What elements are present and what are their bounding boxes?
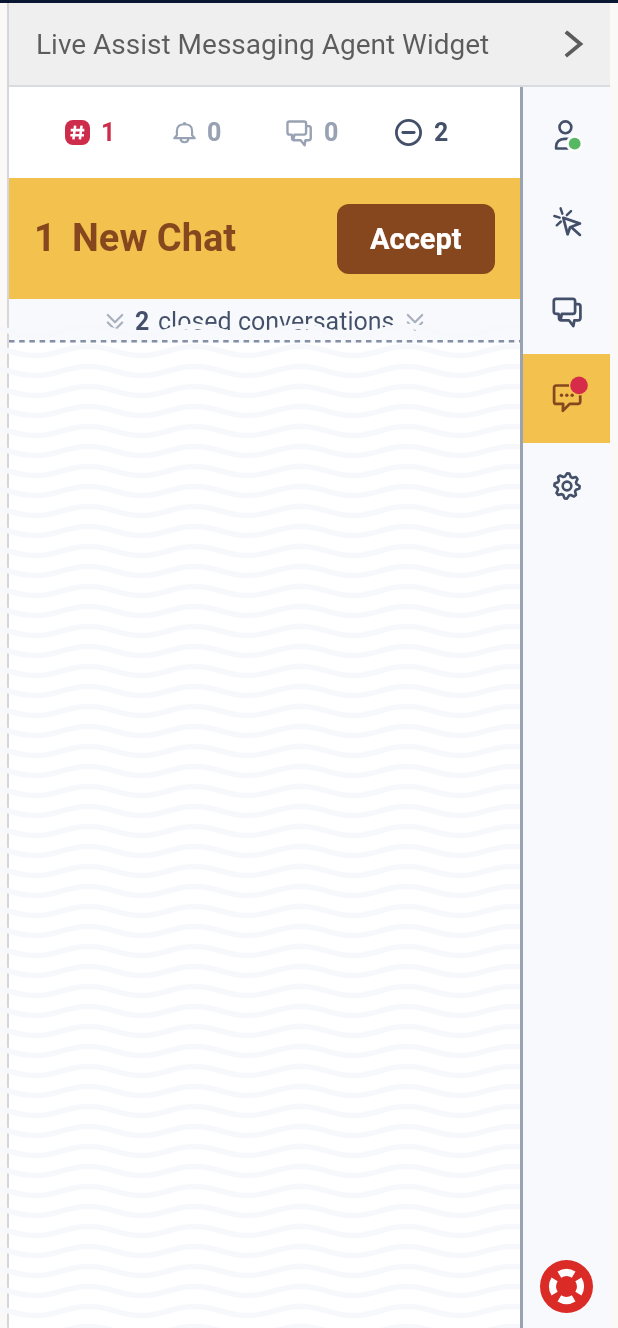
button[interactable]: 2 [9, 299, 520, 343]
button[interactable]: Settings [523, 443, 610, 532]
button[interactable]: 1 [9, 178, 520, 299]
button[interactable]: 1 [65, 118, 116, 147]
staticText: 0 [207, 118, 222, 147]
button[interactable]: 2 [395, 118, 449, 147]
button[interactable]: Help [523, 1244, 610, 1328]
staticText: 2 [434, 118, 449, 147]
staticText: Live Assist Messaging Agent Widget [36, 28, 490, 61]
button[interactable]: Agent status [523, 87, 610, 176]
staticText: closed conversations [158, 307, 395, 336]
staticText: 1 [101, 118, 116, 147]
staticText: 2 [135, 307, 150, 336]
staticText: 1 [34, 216, 56, 261]
staticText: 0 [324, 118, 339, 147]
button[interactable]: Live Assist Messaging Agent Widget [9, 3, 610, 85]
button[interactable]: 0 [285, 118, 339, 147]
button[interactable]: Accept [337, 204, 495, 274]
button[interactable]: Messaging [523, 354, 610, 443]
staticText: New Chat [72, 216, 237, 261]
button[interactable]: Engagements [523, 176, 610, 265]
staticText: Accept [370, 222, 462, 256]
button[interactable]: 0 [173, 118, 222, 147]
button[interactable]: Conversations [523, 265, 610, 354]
button[interactable]: Expand [544, 16, 600, 72]
